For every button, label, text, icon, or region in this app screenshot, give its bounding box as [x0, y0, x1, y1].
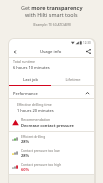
staticText: Total runtime — [13, 59, 36, 64]
button[interactable]: Share — [83, 46, 94, 57]
button[interactable]: Last job — [9, 75, 51, 86]
staticText: 12:30 — [83, 41, 91, 45]
staticText: Last job — [23, 77, 38, 82]
staticText: Efficient drilling — [21, 134, 46, 138]
staticText: 60% — [21, 167, 30, 172]
button[interactable]: Performance — [13, 89, 90, 98]
button[interactable]: Back — [9, 46, 20, 57]
staticText: 6 hours 10 minutes — [13, 65, 50, 70]
staticText: Performance — [13, 91, 38, 96]
button[interactable]: Contact pressure too high — [12, 160, 94, 174]
staticText: Contact pressure too high — [21, 162, 62, 166]
staticText: Lifetime — [65, 77, 81, 82]
staticText: Recommendation — [21, 117, 51, 122]
staticText: Decrease contact pressure — [21, 123, 74, 128]
staticText: (Example: TE 60-ATC/AVR) — [33, 23, 71, 27]
staticText: 28% — [21, 139, 30, 144]
staticText: Effective drilling time — [17, 102, 52, 107]
staticText: 1 hours 20 minutes — [17, 108, 54, 113]
staticText: Contact pressure too low — [21, 148, 60, 152]
staticText: with Hilti smart tools — [25, 11, 78, 18]
staticText: Get more transparency — [21, 4, 83, 11]
button[interactable]: Efficient drilling — [12, 132, 94, 146]
staticText: 28% — [21, 153, 30, 158]
button[interactable]: Contact pressure too low — [12, 146, 94, 160]
button[interactable]: Lifetime — [51, 75, 94, 86]
staticText: Usage info — [40, 49, 62, 55]
